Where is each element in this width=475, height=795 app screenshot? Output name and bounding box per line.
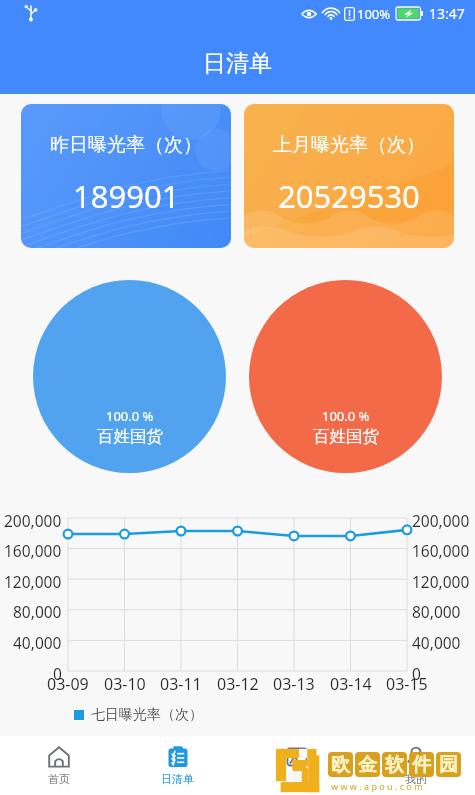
button[interactable]: 上月曝光率（次）	[244, 104, 454, 248]
button[interactable]: 我的	[356, 736, 475, 795]
staticText: 我的	[405, 772, 427, 786]
staticText: 日清单	[161, 772, 194, 786]
staticText: 20529530	[278, 175, 420, 217]
staticText: 03-15	[386, 673, 428, 695]
staticText: 100%	[357, 5, 391, 23]
button[interactable]: 日清单	[118, 736, 237, 795]
staticText: 欧	[331, 753, 350, 777]
staticText: 园	[439, 753, 458, 777]
staticText: 80,000	[412, 601, 461, 622]
staticText: 80,000	[13, 601, 62, 622]
staticText: 软	[385, 753, 404, 777]
staticText: 03-13	[273, 673, 315, 695]
staticText: 200,000	[412, 510, 470, 531]
staticText: 189901	[73, 175, 180, 217]
staticText: 昨日曝光率（次）	[50, 133, 202, 157]
staticText: w w w . a p o u . c o m	[331, 780, 423, 792]
staticText: 件	[412, 753, 431, 777]
staticText: 03-11	[160, 673, 202, 695]
staticText: 160,000	[412, 540, 470, 561]
staticText: 日清单	[203, 49, 272, 78]
staticText: 03-10	[104, 673, 146, 695]
staticText: 03-09	[47, 673, 89, 695]
staticText: 百姓国货	[97, 426, 163, 447]
staticText: 03-14	[330, 673, 372, 695]
staticText: 120,000	[4, 571, 62, 592]
staticText: 上月曝光率（次）	[273, 133, 425, 157]
staticText: 100.0 %	[106, 407, 154, 425]
staticText: 七日曝光率（次）	[91, 706, 203, 724]
staticText: 13:47	[429, 4, 465, 23]
staticText: 40,000	[13, 632, 62, 653]
staticText: 统计	[286, 772, 308, 786]
staticText: 0	[53, 663, 62, 684]
staticText: 160,000	[4, 540, 62, 561]
staticText: 首页	[48, 772, 70, 786]
staticText: 百姓国货	[313, 426, 379, 447]
staticText: 0	[412, 663, 421, 684]
staticText: 金	[358, 753, 377, 777]
staticText: 100.0 %	[322, 407, 370, 425]
button[interactable]: 昨日曝光率（次）	[21, 104, 231, 248]
staticText: 03-12	[217, 673, 259, 695]
staticText: 40,000	[412, 632, 461, 653]
button[interactable]: 首页	[0, 736, 118, 795]
button[interactable]: 统计	[237, 736, 356, 795]
staticText: 200,000	[4, 510, 62, 531]
staticText: 120,000	[412, 571, 470, 592]
